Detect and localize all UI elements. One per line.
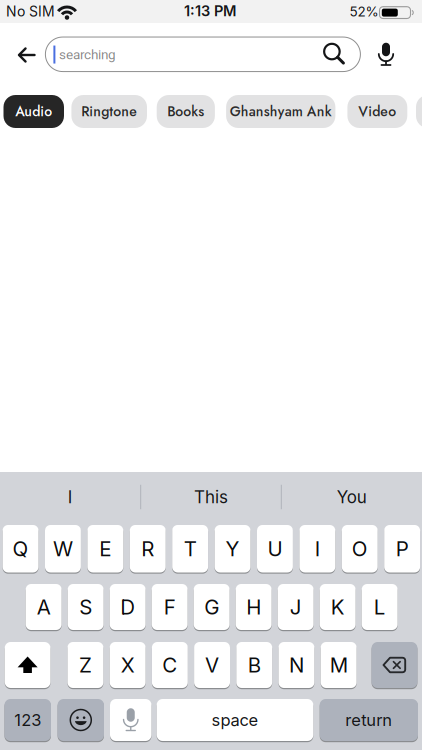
staticText: Books xyxy=(167,101,204,122)
staticText: Q xyxy=(13,536,29,561)
staticText: Y xyxy=(226,536,240,561)
staticText: searching xyxy=(59,47,116,62)
button[interactable]: searching xyxy=(45,37,360,71)
staticText: space xyxy=(211,710,258,730)
staticText: Z xyxy=(79,653,92,677)
staticText: P xyxy=(396,536,409,561)
staticText: L xyxy=(374,595,386,619)
button[interactable]: P xyxy=(384,525,420,572)
staticText: K xyxy=(331,595,345,619)
staticText: Audio xyxy=(15,101,52,122)
staticText: C xyxy=(162,653,177,677)
button[interactable]: G xyxy=(194,584,230,630)
staticText: Ghanshyam Ank xyxy=(230,101,332,122)
button[interactable]: I xyxy=(299,525,335,572)
staticText: D xyxy=(120,595,135,619)
button[interactable]: E xyxy=(87,525,123,572)
staticText: O xyxy=(352,536,368,561)
button[interactable]: Z xyxy=(67,642,103,688)
button[interactable]: You xyxy=(283,473,421,521)
button[interactable]: Back xyxy=(10,38,44,72)
button[interactable]: Ghanshyam Ank xyxy=(226,95,335,128)
staticText: No SIM xyxy=(6,3,55,20)
staticText: V xyxy=(205,653,219,677)
staticText: return xyxy=(345,710,392,730)
button[interactable]: Emoji xyxy=(58,699,104,741)
staticText: G xyxy=(204,595,219,619)
button[interactable]: Books xyxy=(157,95,215,128)
button[interactable]: Delete xyxy=(372,642,417,688)
staticText: Video xyxy=(358,101,396,122)
staticText: X xyxy=(121,653,135,677)
staticText: B xyxy=(248,653,261,677)
staticText: A xyxy=(37,595,51,619)
staticText: 123 xyxy=(14,710,41,730)
button[interactable]: R xyxy=(130,525,166,572)
button[interactable]: U xyxy=(257,525,293,572)
button[interactable]: Q xyxy=(3,525,38,572)
staticText: Ringtone xyxy=(81,101,137,122)
staticText: I xyxy=(315,536,320,561)
button[interactable]: C xyxy=(152,642,188,688)
button[interactable]: I xyxy=(1,473,139,521)
staticText: J xyxy=(290,595,302,619)
button[interactable]: W xyxy=(45,525,81,572)
staticText: U xyxy=(267,536,282,561)
staticText: R xyxy=(141,536,154,561)
button[interactable]: Video xyxy=(347,95,407,128)
button[interactable]: return xyxy=(320,699,418,741)
button[interactable]: F xyxy=(152,584,188,630)
staticText: T xyxy=(184,536,197,561)
staticText: This xyxy=(194,487,228,507)
button[interactable]: S xyxy=(68,584,104,630)
button[interactable]: M xyxy=(321,642,357,688)
button[interactable]: L xyxy=(362,584,398,630)
button[interactable]: This xyxy=(142,473,280,521)
button[interactable]: V xyxy=(194,642,230,688)
button[interactable]: Shift xyxy=(5,642,50,688)
staticText: E xyxy=(99,536,111,561)
button[interactable]: O xyxy=(342,525,378,572)
staticText: S xyxy=(79,595,92,619)
button[interactable]: H xyxy=(236,584,272,630)
staticText: M xyxy=(330,653,348,677)
staticText: 1:13 PM xyxy=(184,2,236,20)
button[interactable]: T xyxy=(172,525,208,572)
button[interactable]: A xyxy=(26,584,62,630)
button[interactable]: More xyxy=(416,95,422,128)
button[interactable]: K xyxy=(320,584,356,630)
staticText: W xyxy=(53,536,73,561)
button[interactable]: D xyxy=(110,584,146,630)
staticText: You xyxy=(337,487,367,507)
button[interactable]: J xyxy=(278,584,314,630)
staticText: N xyxy=(289,653,304,677)
button[interactable]: 123 xyxy=(4,699,51,741)
button[interactable]: Voice search xyxy=(375,41,397,67)
button[interactable]: Audio xyxy=(3,95,64,128)
staticText: I xyxy=(68,487,73,507)
staticText: 52% xyxy=(349,3,378,20)
staticText: F xyxy=(164,595,176,619)
button[interactable]: X xyxy=(110,642,146,688)
button[interactable]: Y xyxy=(215,525,250,572)
button[interactable]: B xyxy=(236,642,272,688)
staticText: H xyxy=(246,595,261,619)
button[interactable]: Ringtone xyxy=(71,95,147,128)
button[interactable]: N xyxy=(278,642,314,688)
button[interactable]: Dictation xyxy=(110,699,151,741)
button[interactable]: space xyxy=(157,699,313,741)
